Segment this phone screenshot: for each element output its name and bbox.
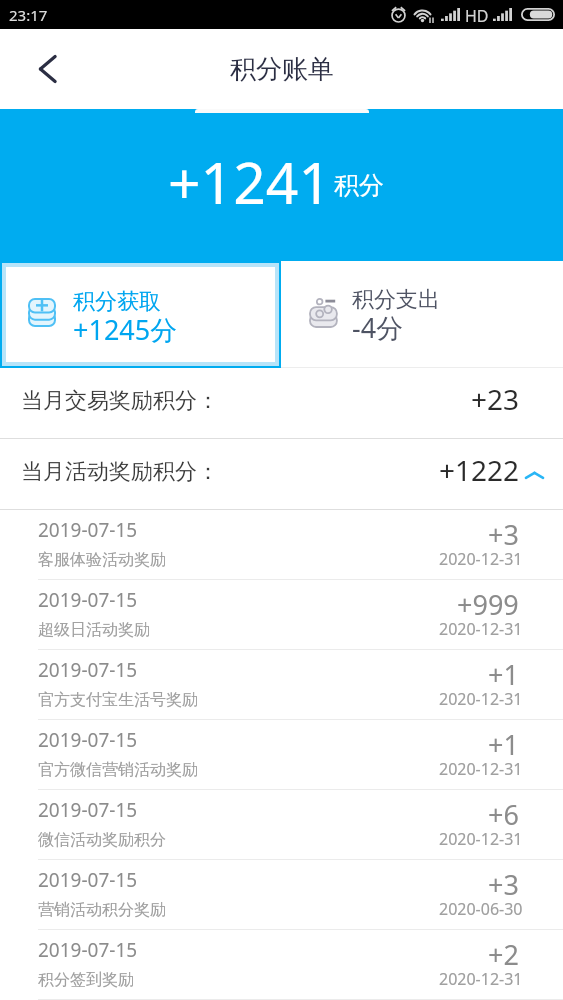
staticText: +3 [488, 866, 519, 903]
staticText: 官方微信营销活动奖励 [38, 760, 198, 780]
staticText: 2020-12-31 [439, 968, 523, 990]
staticText: +1245分 [73, 311, 178, 348]
staticText: +1 [488, 656, 519, 693]
staticText: 2019-07-15 [38, 797, 138, 823]
staticText: 微信活动奖励积分 [38, 830, 166, 850]
staticText: +6 [488, 796, 519, 833]
staticText: +3 [488, 516, 519, 553]
staticText: 2020-12-31 [439, 618, 523, 640]
staticText: +1 [488, 726, 519, 763]
staticText: 积分 [334, 170, 384, 201]
staticText: HD [465, 5, 489, 27]
staticText: 2019-07-15 [38, 657, 138, 683]
staticText: +23 [471, 380, 520, 418]
button[interactable]: 2019-07-15 [0, 650, 563, 720]
staticText: +2 [488, 936, 519, 973]
staticText: 当月活动奖励积分： [21, 458, 219, 486]
button[interactable]: 2019-07-15 [0, 860, 563, 930]
button[interactable]: Back [0, 29, 90, 109]
staticText: 2019-07-15 [38, 517, 138, 543]
staticText: 2020-06-30 [439, 898, 523, 920]
staticText: 官方支付宝生活号奖励 [38, 690, 198, 710]
button[interactable]: 积分获取 [6, 267, 275, 362]
button[interactable]: 2019-07-15 [0, 930, 563, 1000]
staticText: +1241 [168, 143, 332, 221]
staticText: 2019-07-15 [38, 727, 138, 753]
button[interactable]: 当月活动奖励积分： [0, 439, 563, 509]
staticText: 超级日活动奖励 [38, 620, 150, 640]
staticText: 客服体验活动奖励 [38, 550, 166, 570]
staticText: 积分获取 [73, 288, 161, 316]
button[interactable]: 2019-07-15 [0, 720, 563, 790]
staticText: 积分签到奖励 [38, 970, 134, 990]
staticText: 2020-12-31 [439, 548, 523, 570]
staticText: 23:17 [9, 5, 48, 25]
button[interactable]: 积分支出 [281, 261, 563, 368]
staticText: 当月交易奖励积分： [21, 387, 219, 415]
staticText: 2019-07-15 [38, 937, 138, 963]
staticText: -4分 [352, 309, 404, 346]
button[interactable]: 2019-07-15 [0, 510, 563, 580]
button[interactable]: 2019-07-15 [0, 580, 563, 650]
staticText: 积分账单 [230, 53, 334, 86]
staticText: +1222 [439, 451, 520, 489]
staticText: 积分支出 [352, 286, 440, 314]
staticText: +999 [457, 586, 519, 623]
staticText: 2019-07-15 [38, 587, 138, 613]
button[interactable]: 2019-07-15 [0, 790, 563, 860]
staticText: 2020-12-31 [439, 828, 523, 850]
button[interactable]: 当月交易奖励积分： [0, 368, 563, 438]
staticText: 2019-07-15 [38, 867, 138, 893]
staticText: 2020-12-31 [439, 688, 523, 710]
staticText: 营销活动积分奖励 [38, 900, 166, 920]
staticText: 2020-12-31 [439, 758, 523, 780]
